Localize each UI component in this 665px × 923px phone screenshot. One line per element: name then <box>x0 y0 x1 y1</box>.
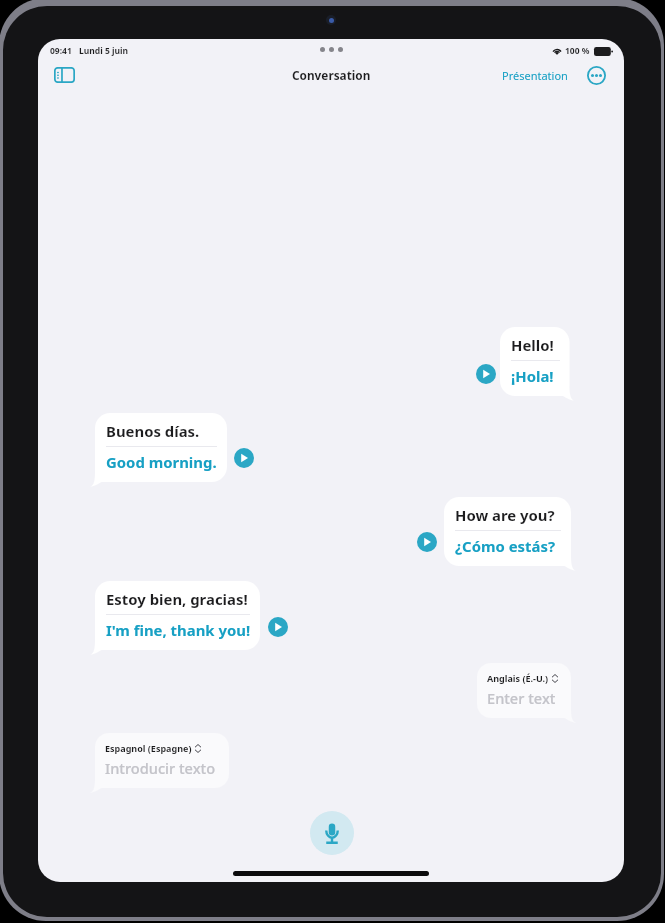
button[interactable]: Anglais (É.-U.) <box>469 663 579 726</box>
staticText: How are you? <box>455 505 555 525</box>
button[interactable]: How are you? <box>436 497 579 574</box>
button[interactable]: Espagnol (Espagne) <box>87 733 237 796</box>
button[interactable]: Présentation <box>498 62 572 89</box>
staticText: Estoy bien, gracias! <box>106 589 248 609</box>
staticText: ¿Cómo estás? <box>455 536 555 556</box>
staticText: 09:41 <box>50 45 72 57</box>
staticText: ¡Hola! <box>511 366 554 386</box>
button[interactable]: Hello! <box>492 327 578 404</box>
staticText: Introducir texto <box>105 758 216 778</box>
staticText: Espagnol (Espagne) <box>105 742 192 754</box>
staticText: Enter text <box>487 688 556 708</box>
staticText: 100 % <box>565 45 590 57</box>
button[interactable]: Buenos días. <box>87 413 235 490</box>
button[interactable]: Play translation <box>234 448 254 468</box>
button[interactable]: Estoy bien, gracias! <box>87 581 268 658</box>
staticText: Lundi 5 juin <box>79 45 129 57</box>
button[interactable]: Play translation <box>476 364 496 384</box>
button[interactable]: More options <box>581 60 611 90</box>
staticText: Hello! <box>511 335 554 355</box>
button[interactable]: Play translation <box>417 532 437 552</box>
button[interactable]: Record audio <box>310 811 354 855</box>
staticText: Conversation <box>292 67 371 83</box>
staticText: Good morning. <box>106 452 217 472</box>
button[interactable]: Show sidebar <box>47 58 81 92</box>
staticText: Buenos días. <box>106 421 200 441</box>
staticText: Présentation <box>502 68 568 83</box>
staticText: I'm fine, thank you! <box>106 620 250 640</box>
button[interactable]: Play translation <box>268 617 288 637</box>
staticText: Anglais (É.-U.) <box>487 672 549 684</box>
